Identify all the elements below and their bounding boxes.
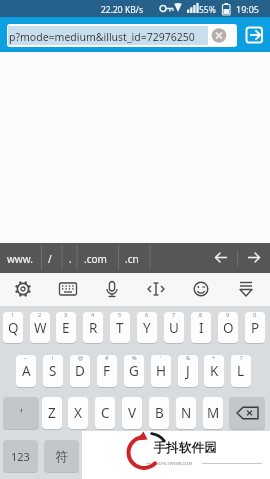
staticText: . [69, 252, 72, 266]
button[interactable] [84, 440, 187, 472]
staticText: H [156, 362, 167, 380]
staticText: L [237, 362, 245, 380]
button[interactable] [232, 440, 265, 472]
staticText: K [210, 362, 219, 380]
staticText: U [169, 319, 179, 337]
staticText: I [199, 319, 204, 337]
button[interactable]: I [191, 312, 211, 343]
staticText: M [207, 404, 220, 422]
staticText: 0 [253, 311, 257, 318]
staticText: J [186, 362, 190, 380]
button[interactable]: L [231, 355, 251, 387]
staticText: .com [84, 252, 107, 266]
staticText: @ [78, 354, 83, 361]
staticText: ' [20, 405, 23, 421]
staticText: B [155, 404, 164, 422]
staticText: & [186, 354, 191, 361]
staticText: Q [8, 319, 19, 337]
staticText: X [74, 404, 82, 422]
button[interactable]: O [218, 312, 238, 343]
staticText: P [251, 319, 260, 337]
button[interactable]: V [122, 397, 142, 429]
staticText: N [181, 404, 192, 422]
staticText: % [132, 354, 137, 361]
staticText: W [34, 319, 47, 337]
button[interactable]: A [16, 355, 36, 387]
button[interactable]: F [97, 355, 117, 387]
button[interactable]: T [110, 312, 130, 343]
staticText: 5 [118, 311, 122, 318]
staticText: 8 [199, 311, 203, 318]
button[interactable]: X [68, 397, 88, 429]
staticText: 3 [64, 311, 68, 318]
staticText: C [101, 404, 110, 422]
staticText: V [128, 404, 137, 422]
button[interactable]: W [30, 312, 50, 343]
button[interactable]: G [124, 355, 144, 387]
staticText: 22.20 KB/s [101, 4, 143, 16]
staticText: 2 [38, 311, 42, 318]
button[interactable]: ' [3, 397, 39, 429]
staticText: A [22, 362, 31, 380]
staticText: .cn [125, 252, 139, 266]
staticText: 6 [145, 311, 149, 318]
staticText: Y [143, 319, 151, 337]
staticText: 123 [11, 449, 30, 464]
button[interactable]: H [151, 355, 171, 387]
staticText: BDHL7WEB8.COM [156, 460, 193, 466]
button[interactable]: 符 [44, 440, 79, 472]
staticText: p?mode=medium&illust_id=72976250 [9, 30, 195, 44]
button[interactable]: 123 [3, 440, 38, 472]
staticText: ~ [24, 354, 28, 361]
button[interactable]: Z [42, 397, 62, 429]
staticText: * [212, 354, 216, 361]
button[interactable] [229, 397, 265, 429]
staticText: 手抖软件园 [153, 440, 217, 456]
button[interactable]: Y [137, 312, 157, 343]
staticText: ! [52, 354, 54, 361]
staticText: / [48, 252, 52, 266]
button[interactable]: U [164, 312, 184, 343]
staticText: R [89, 319, 98, 337]
button[interactable]: S [43, 355, 63, 387]
button[interactable] [7, 24, 237, 47]
staticText: D [75, 362, 85, 380]
button[interactable]: J [178, 355, 198, 387]
button[interactable]: P [245, 312, 265, 343]
staticText: 。 [203, 448, 217, 465]
staticText: G [129, 362, 139, 380]
button[interactable] [0, 273, 270, 306]
button[interactable]: D [70, 355, 90, 387]
staticText: F [103, 362, 111, 380]
staticText: T [116, 319, 124, 337]
staticText: S [49, 362, 57, 380]
staticText: E [62, 319, 70, 337]
staticText: www. [7, 252, 33, 266]
staticText: 9 [226, 311, 230, 318]
staticText: ? [240, 354, 243, 361]
staticText: 符 [55, 448, 68, 464]
button[interactable]: C [95, 397, 115, 429]
staticText: ' [160, 354, 162, 361]
staticText: 55% [199, 4, 216, 16]
staticText: Z [48, 404, 56, 422]
staticText: O [223, 319, 234, 337]
staticText: 19:05 [236, 3, 260, 15]
staticText: 4 [91, 311, 95, 318]
button[interactable]: E [56, 312, 76, 343]
button[interactable]: Q [3, 312, 23, 343]
button[interactable]: M [203, 397, 223, 429]
staticText: 7 [172, 311, 176, 318]
button[interactable]: K [204, 355, 224, 387]
staticText: 1 [11, 311, 15, 318]
button[interactable]: R [83, 312, 103, 343]
button[interactable]: B [149, 397, 169, 429]
button[interactable]: 。 [192, 440, 227, 472]
staticText: # [105, 354, 109, 361]
button[interactable]: N [176, 397, 196, 429]
